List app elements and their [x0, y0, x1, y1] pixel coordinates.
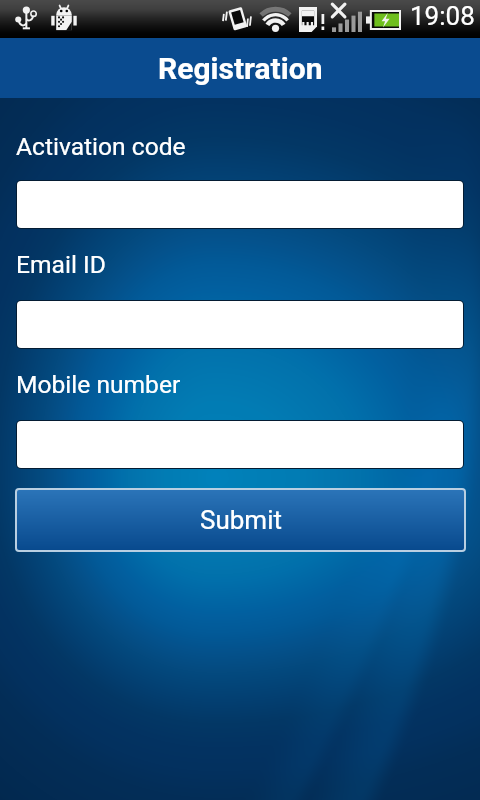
- button[interactable]: [17, 421, 463, 468]
- staticText: Mobile number: [16, 370, 181, 399]
- staticText: Activation code: [16, 132, 186, 161]
- button[interactable]: [17, 301, 463, 348]
- staticText: Registration: [158, 51, 323, 86]
- staticText: Email ID: [16, 250, 106, 279]
- button[interactable]: [17, 181, 463, 228]
- staticText: Submit: [200, 505, 282, 535]
- button[interactable]: Submit: [17, 490, 464, 550]
- staticText: 19:08: [410, 1, 475, 31]
